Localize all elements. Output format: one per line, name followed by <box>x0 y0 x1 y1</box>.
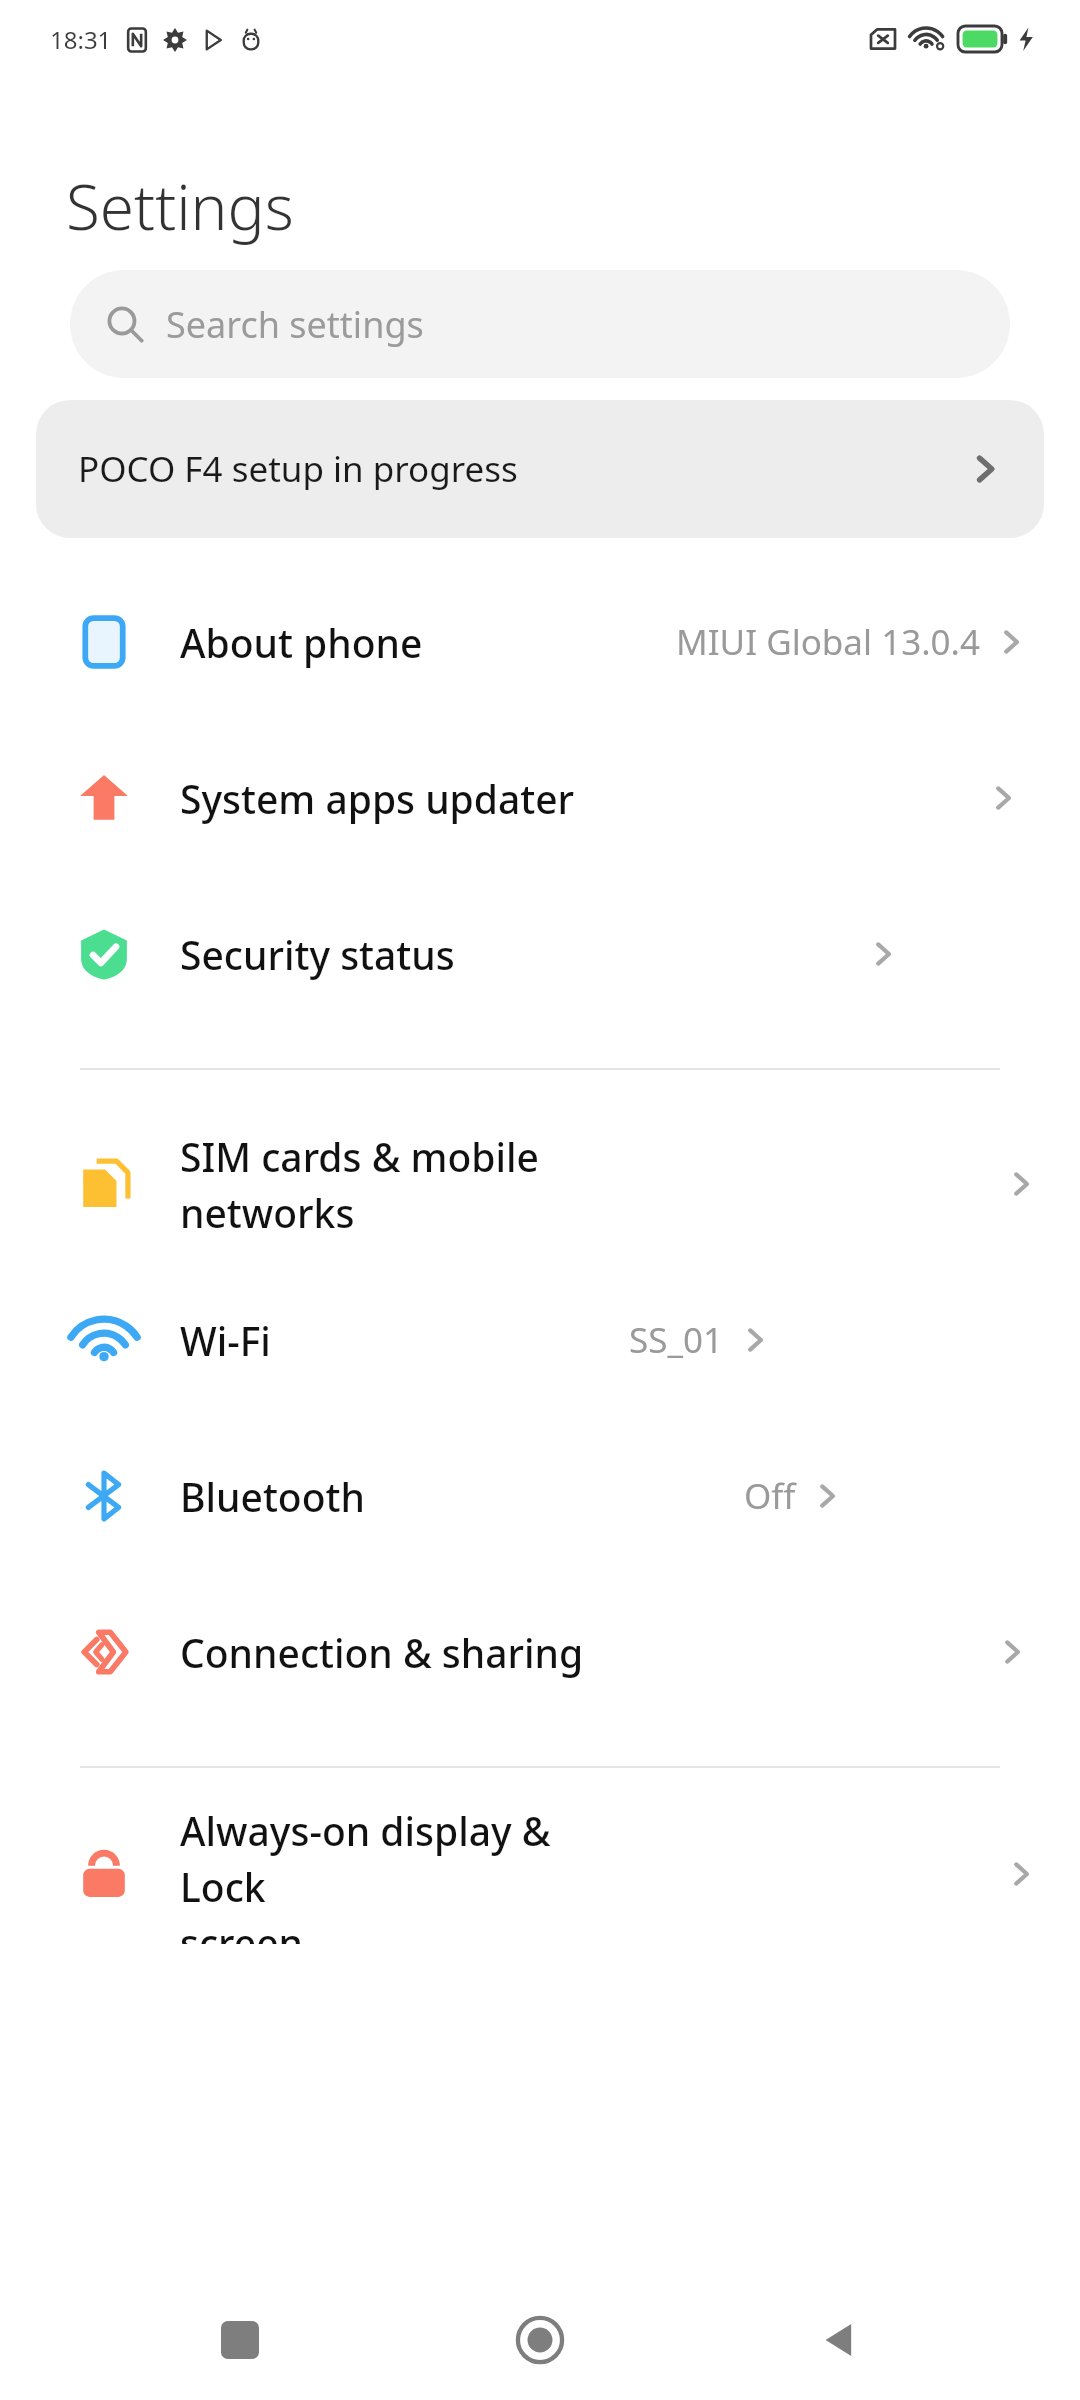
staticText: Off <box>744 1472 796 1520</box>
button[interactable]: Security status <box>0 876 1080 1032</box>
staticText: MIUI Global 13.0.4 <box>676 618 980 666</box>
staticText: Connection & sharing <box>180 1626 584 1679</box>
button[interactable]: Search settings <box>70 270 1010 378</box>
button[interactable]: About phone <box>0 564 1080 720</box>
button[interactable]: System apps updater <box>0 720 1080 876</box>
button[interactable]: Connection & sharing <box>0 1574 1080 1730</box>
button[interactable]: Recents <box>180 2280 300 2400</box>
staticText: Always-on display & Lock screen <box>180 1804 593 1944</box>
button[interactable]: SIM cards & mobile networks <box>0 1106 1080 1262</box>
staticText: System apps updater <box>180 772 575 825</box>
staticText: SS_01 <box>629 1316 724 1364</box>
button[interactable]: Wi-Fi <box>0 1262 1080 1418</box>
staticText: Security status <box>180 928 455 981</box>
button[interactable]: Bluetooth <box>0 1418 1080 1574</box>
staticText: SIM cards & mobile networks <box>180 1130 593 1239</box>
staticText: 18:31 <box>50 23 112 56</box>
staticText: About phone <box>180 616 423 669</box>
staticText: Search settings <box>166 300 424 349</box>
button[interactable]: Back <box>780 2280 900 2400</box>
staticText: Bluetooth <box>180 1470 365 1523</box>
staticText: Settings <box>66 164 294 248</box>
staticText: Wi-Fi <box>180 1314 271 1367</box>
button[interactable]: POCO F4 setup in progress <box>36 400 1044 538</box>
button[interactable]: Always-on display & Lock screen <box>0 1804 1080 1944</box>
staticText: POCO F4 setup in progress <box>78 445 518 493</box>
button[interactable]: Home <box>480 2280 600 2400</box>
